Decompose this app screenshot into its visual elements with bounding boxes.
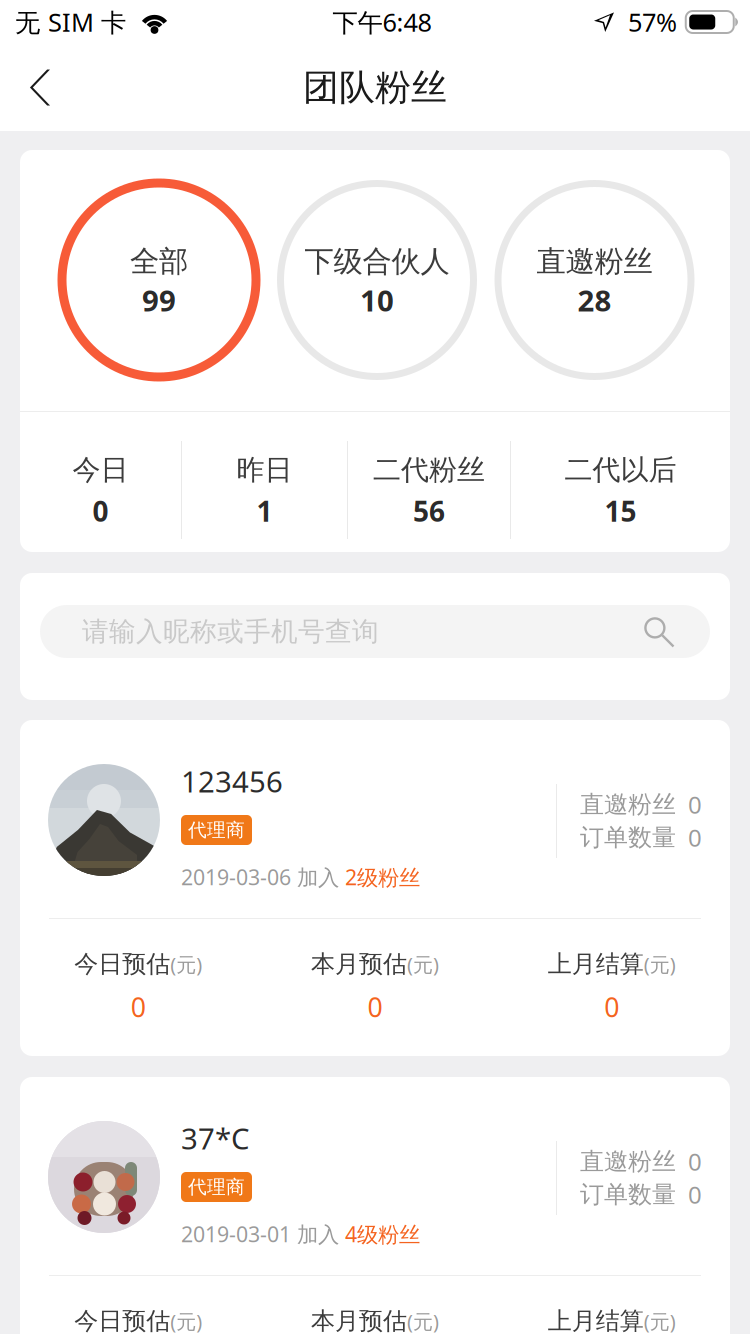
button[interactable]: 下级合伙人 <box>280 183 473 376</box>
staticText: 直邀粉丝 <box>536 243 652 279</box>
staticText: 代理商 <box>188 818 245 841</box>
staticText: 昨日 <box>236 453 292 487</box>
staticText: 0 <box>367 989 382 1025</box>
staticText: (元) <box>407 1308 439 1334</box>
staticText: 10 <box>360 280 394 319</box>
staticText: 上月结算 <box>548 1306 644 1334</box>
staticText: 4级粉丝 <box>345 1220 420 1248</box>
staticText: 今日预估 <box>74 949 170 979</box>
staticText: 0 <box>688 1179 702 1210</box>
staticText: 本月预估 <box>311 1306 407 1334</box>
staticText: 请输入昵称或手机号查询 <box>82 615 379 648</box>
staticText: (元) <box>644 1308 676 1334</box>
staticText: 0 <box>92 492 108 530</box>
staticText: 二代以后 <box>564 453 676 487</box>
staticText: 123456 <box>181 761 283 800</box>
staticText: 直邀粉丝 <box>580 790 676 819</box>
staticText: 28 <box>577 280 611 319</box>
staticText: (元) <box>170 1308 202 1334</box>
staticText: 1 <box>256 492 272 530</box>
staticText: 37*C <box>181 1118 250 1157</box>
staticText: 0 <box>688 789 702 820</box>
staticText: 2019-03-01 加入 <box>181 1220 345 1248</box>
staticText: 订单数量 <box>580 823 676 852</box>
staticText: 今日预估 <box>74 1306 170 1334</box>
staticText: 57% <box>628 5 677 39</box>
staticText: 0 <box>131 989 146 1025</box>
staticText: 代理商 <box>188 1175 245 1198</box>
staticText: 团队粉丝 <box>303 65 447 110</box>
button[interactable]: Back <box>0 45 80 129</box>
staticText: 56 <box>413 492 445 530</box>
staticText: 0 <box>688 1146 702 1177</box>
button[interactable]: 请输入昵称或手机号查询 <box>20 573 730 700</box>
staticText: 直邀粉丝 <box>580 1147 676 1176</box>
staticText: 二代粉丝 <box>373 453 485 487</box>
staticText: (元) <box>644 951 676 978</box>
staticText: 下级合伙人 <box>304 243 449 279</box>
staticText: 上月结算 <box>548 949 644 979</box>
staticText: 全部 <box>130 243 188 279</box>
staticText: 2级粉丝 <box>345 863 420 891</box>
staticText: 2019-03-06 加入 <box>181 863 345 891</box>
staticText: 下午6:48 <box>332 5 431 39</box>
button[interactable]: 全部 <box>62 183 256 377</box>
staticText: 0 <box>604 989 619 1025</box>
staticText: 99 <box>142 280 176 319</box>
staticText: 无 SIM 卡 <box>15 5 126 39</box>
staticText: 今日 <box>72 453 128 487</box>
button[interactable]: 123456 <box>20 720 730 1056</box>
button[interactable]: 直邀粉丝 <box>498 183 691 376</box>
staticText: 本月预估 <box>311 949 407 979</box>
staticText: 0 <box>688 822 702 853</box>
staticText: 订单数量 <box>580 1180 676 1209</box>
staticText: 15 <box>604 492 636 530</box>
button[interactable]: 37*C <box>20 1077 730 1334</box>
staticText: (元) <box>407 951 439 978</box>
staticText: (元) <box>170 951 202 978</box>
